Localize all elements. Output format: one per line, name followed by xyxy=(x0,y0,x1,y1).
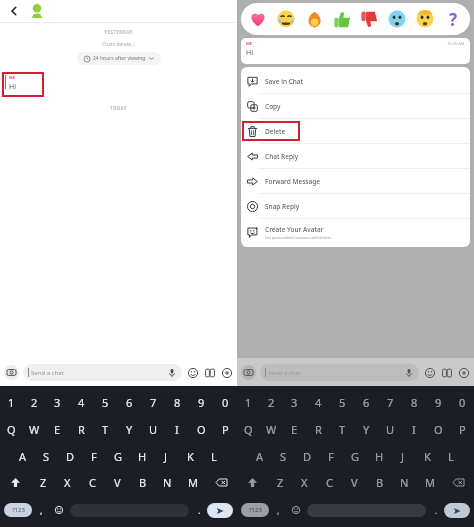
button[interactable]: Thumbs down xyxy=(358,8,380,30)
button[interactable]: 9 xyxy=(426,391,450,413)
button[interactable]: Question xyxy=(442,8,464,30)
button[interactable]: K xyxy=(178,445,202,467)
button[interactable]: B xyxy=(367,471,392,493)
button[interactable]: Space xyxy=(70,504,189,517)
button[interactable]: 2 xyxy=(260,391,283,413)
button[interactable]: Shift xyxy=(0,471,31,493)
button[interactable]: joy xyxy=(275,8,297,30)
button[interactable]: Z xyxy=(268,471,292,493)
button[interactable]: 0 xyxy=(213,391,237,413)
button[interactable]: T xyxy=(93,418,117,440)
button[interactable]: V xyxy=(105,471,130,493)
button[interactable]: Send a chat xyxy=(260,364,419,381)
button[interactable]: Voice xyxy=(404,368,414,378)
button[interactable]: N xyxy=(155,471,180,493)
button[interactable]: 7 xyxy=(141,391,165,413)
button[interactable]: J xyxy=(391,445,415,467)
button[interactable]: N xyxy=(392,471,417,493)
button[interactable]: W xyxy=(260,418,283,440)
button[interactable]: Save in Chat xyxy=(241,69,470,93)
button[interactable]: Shift xyxy=(237,471,268,493)
button[interactable]: B xyxy=(130,471,155,493)
button[interactable]: V xyxy=(342,471,367,493)
button[interactable]: 1 xyxy=(0,391,23,413)
button[interactable]: L xyxy=(202,445,226,467)
button[interactable]: Fire xyxy=(303,8,325,30)
button[interactable]: 2 xyxy=(23,391,46,413)
button[interactable]: T xyxy=(330,418,354,440)
button[interactable]: A xyxy=(11,445,34,467)
button[interactable]: Create Your Avatar xyxy=(241,219,470,245)
button[interactable]: Backspace xyxy=(442,471,474,493)
button[interactable]: Camera xyxy=(4,365,19,380)
button[interactable]: Back xyxy=(6,3,22,19)
button[interactable]: Send xyxy=(444,503,470,518)
button[interactable]: Stickers xyxy=(203,366,216,379)
button[interactable]: 6 xyxy=(354,391,378,413)
button[interactable]: Delete xyxy=(241,119,470,143)
button[interactable]: S xyxy=(34,445,58,467)
button[interactable]: More xyxy=(220,366,233,379)
button[interactable]: Emoji xyxy=(50,498,68,522)
button[interactable]: 5 xyxy=(330,391,354,413)
button[interactable]: 8 xyxy=(165,391,189,413)
button[interactable]: H xyxy=(367,445,391,467)
button[interactable]: O xyxy=(426,418,450,440)
button[interactable]: U xyxy=(141,418,165,440)
button[interactable]: , xyxy=(32,498,50,522)
button[interactable]: Thumbs up xyxy=(331,8,353,30)
button[interactable]: W xyxy=(23,418,46,440)
button[interactable]: . xyxy=(191,498,207,522)
button[interactable]: X xyxy=(55,471,80,493)
button[interactable]: Q xyxy=(237,418,260,440)
button[interactable]: Profile xyxy=(28,2,46,20)
button[interactable]: G xyxy=(106,445,130,467)
button[interactable]: 0 xyxy=(450,391,474,413)
button[interactable]: 5 xyxy=(93,391,117,413)
button[interactable]: D xyxy=(295,445,319,467)
button[interactable]: 4 xyxy=(69,391,93,413)
button[interactable]: R xyxy=(306,418,330,440)
button[interactable]: 9 xyxy=(189,391,213,413)
button[interactable]: 7 xyxy=(378,391,402,413)
button[interactable]: Camera xyxy=(241,365,256,380)
button[interactable]: E xyxy=(46,418,69,440)
button[interactable]: I xyxy=(402,418,426,440)
button[interactable]: Send xyxy=(207,503,233,518)
button[interactable]: F xyxy=(319,445,343,467)
button[interactable]: F xyxy=(82,445,106,467)
button[interactable]: L xyxy=(439,445,463,467)
button[interactable]: S xyxy=(271,445,295,467)
button[interactable]: K xyxy=(415,445,439,467)
button[interactable]: Copy xyxy=(241,94,470,118)
button[interactable]: . xyxy=(428,498,444,522)
button[interactable]: Heart xyxy=(247,8,269,30)
button[interactable]: 4 xyxy=(306,391,330,413)
button[interactable]: Stickers xyxy=(440,366,453,379)
button[interactable]: 8 xyxy=(402,391,426,413)
button[interactable]: Send a chat xyxy=(23,364,182,381)
button[interactable]: Backspace xyxy=(205,471,237,493)
button[interactable]: Voice xyxy=(167,368,177,378)
button[interactable]: U xyxy=(378,418,402,440)
button[interactable]: C xyxy=(317,471,342,493)
button[interactable]: P xyxy=(213,418,237,440)
button[interactable]: R xyxy=(69,418,93,440)
button[interactable]: P xyxy=(450,418,474,440)
button[interactable]: O xyxy=(189,418,213,440)
button[interactable]: hair xyxy=(414,8,436,30)
button[interactable]: I xyxy=(165,418,189,440)
button[interactable]: 3 xyxy=(46,391,69,413)
button[interactable]: More xyxy=(457,366,470,379)
button[interactable]: ME xyxy=(241,38,470,64)
button[interactable]: , xyxy=(269,498,287,522)
button[interactable]: ?123 xyxy=(241,503,269,517)
button[interactable]: Snap Reply xyxy=(241,194,470,218)
button[interactable]: 3 xyxy=(283,391,306,413)
button[interactable]: Chat Reply xyxy=(241,144,470,168)
button[interactable]: D xyxy=(58,445,82,467)
button[interactable]: ?123 xyxy=(4,503,32,517)
button[interactable]: Space xyxy=(307,504,426,517)
button[interactable]: 24 hours after viewing xyxy=(77,52,161,65)
button[interactable]: G xyxy=(343,445,367,467)
